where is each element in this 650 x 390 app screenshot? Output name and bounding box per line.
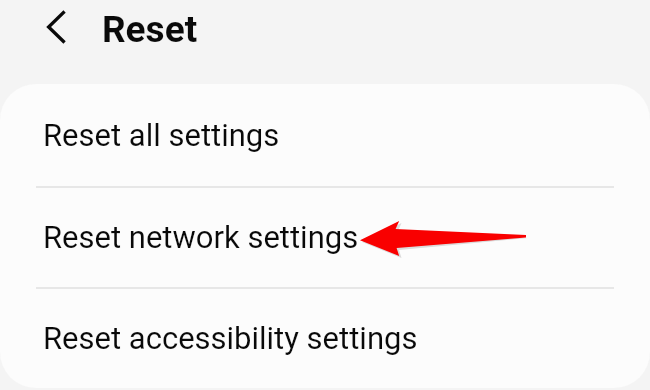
- staticText: Reset all settings: [43, 117, 280, 153]
- staticText: Reset: [102, 8, 198, 51]
- button[interactable]: Reset accessibility settings: [0, 287, 650, 388]
- button[interactable]: Reset network settings: [0, 186, 650, 287]
- button[interactable]: Back: [33, 4, 79, 50]
- staticText: Reset accessibility settings: [43, 320, 418, 356]
- staticText: Reset network settings: [43, 219, 359, 255]
- button[interactable]: Reset all settings: [0, 84, 650, 186]
